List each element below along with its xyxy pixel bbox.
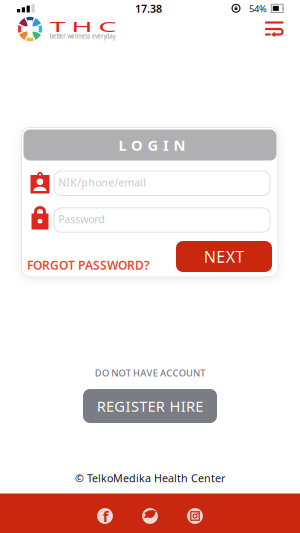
staticText: 17.38: [135, 1, 162, 16]
staticText: REGISTER HIRE: [97, 396, 203, 416]
staticText: DO NOT HAVE ACCOUNT: [95, 367, 205, 379]
staticText: LOGIN: [118, 135, 185, 155]
staticText: NEXT: [204, 246, 244, 267]
staticText: Password: [58, 212, 105, 226]
staticText: THC: [64, 16, 101, 37]
staticText: f: [103, 506, 109, 526]
staticText: NIK/phone/email: [58, 175, 146, 189]
staticText: better wellness everyday: [43, 32, 121, 40]
staticText: FORGOT PASSWORD?: [27, 257, 150, 273]
staticText: © TelkoMedika Health Center: [75, 471, 225, 485]
staticText: 54%: [249, 2, 267, 15]
